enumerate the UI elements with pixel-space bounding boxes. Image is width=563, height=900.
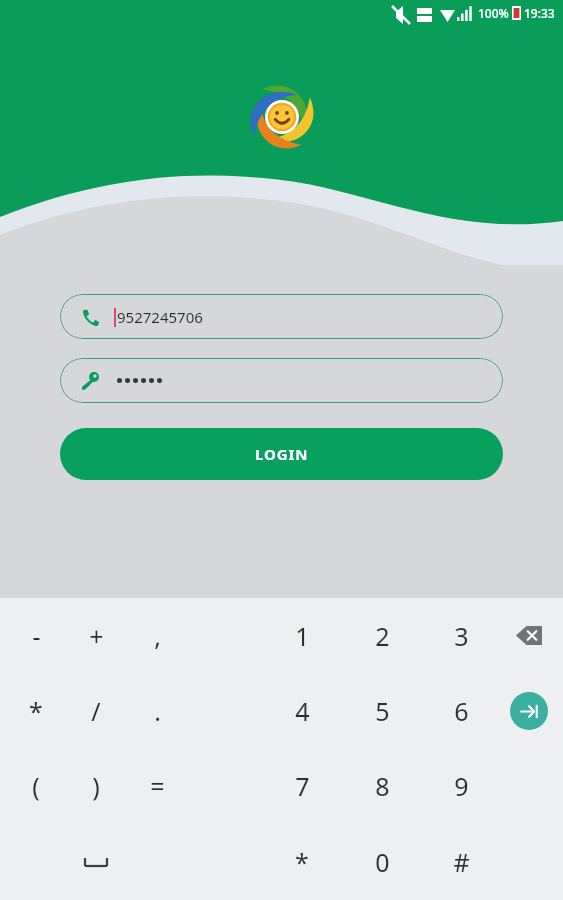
staticText: - — [32, 619, 41, 653]
button[interactable]: 3 — [433, 598, 489, 673]
button[interactable]: 1 — [274, 598, 330, 673]
button[interactable] — [60, 358, 503, 403]
staticText: . — [154, 694, 161, 728]
button[interactable]: - — [8, 598, 64, 673]
staticText: 1 — [295, 619, 310, 653]
button[interactable]: / — [68, 673, 124, 748]
staticText: LOGIN — [255, 444, 309, 464]
staticText: ) — [92, 769, 100, 803]
staticText: 19:33 — [524, 5, 555, 21]
staticText: * — [29, 694, 43, 728]
button[interactable]: , — [129, 598, 185, 673]
staticText: 0 — [375, 845, 390, 879]
button[interactable]: + — [68, 598, 124, 673]
button[interactable]: 8 — [354, 748, 410, 824]
button[interactable]: 4 — [274, 673, 330, 748]
staticText: 9527245706 — [117, 307, 203, 327]
staticText: 5 — [375, 694, 390, 728]
button[interactable]: 5 — [354, 673, 410, 748]
staticText: ( — [32, 769, 40, 803]
staticText: # — [453, 845, 470, 879]
button[interactable]: = — [129, 748, 185, 824]
button[interactable]: . — [129, 673, 185, 748]
button[interactable]: 2 — [354, 598, 410, 673]
button[interactable]: 0 — [354, 824, 410, 900]
button[interactable]: Backspace — [501, 598, 557, 673]
button[interactable]: 6 — [433, 673, 489, 748]
button[interactable]: 7 — [274, 748, 330, 824]
staticText: 6 — [454, 694, 469, 728]
button[interactable]: 9 — [433, 748, 489, 824]
button[interactable]: # — [433, 824, 489, 900]
button[interactable]: LOGIN — [60, 428, 503, 480]
button[interactable]: ( — [8, 748, 64, 824]
staticText: 8 — [375, 769, 390, 803]
staticText: 4 — [295, 694, 310, 728]
staticText: 3 — [454, 619, 469, 653]
staticText: 7 — [295, 769, 310, 803]
staticText: 9 — [454, 769, 469, 803]
staticText: = — [150, 769, 165, 803]
staticText: 100% — [478, 5, 509, 21]
staticText: / — [91, 694, 101, 728]
staticText: * — [295, 845, 309, 879]
button[interactable]: * — [8, 673, 64, 748]
staticText: + — [89, 619, 104, 653]
button[interactable]: ) — [68, 748, 124, 824]
button[interactable]: 9527245706 — [60, 294, 503, 339]
staticText: , — [154, 619, 161, 653]
button[interactable]: * — [274, 824, 330, 900]
button[interactable]: Enter — [501, 673, 557, 748]
staticText: 2 — [375, 619, 390, 653]
button[interactable]: Space — [68, 824, 124, 900]
